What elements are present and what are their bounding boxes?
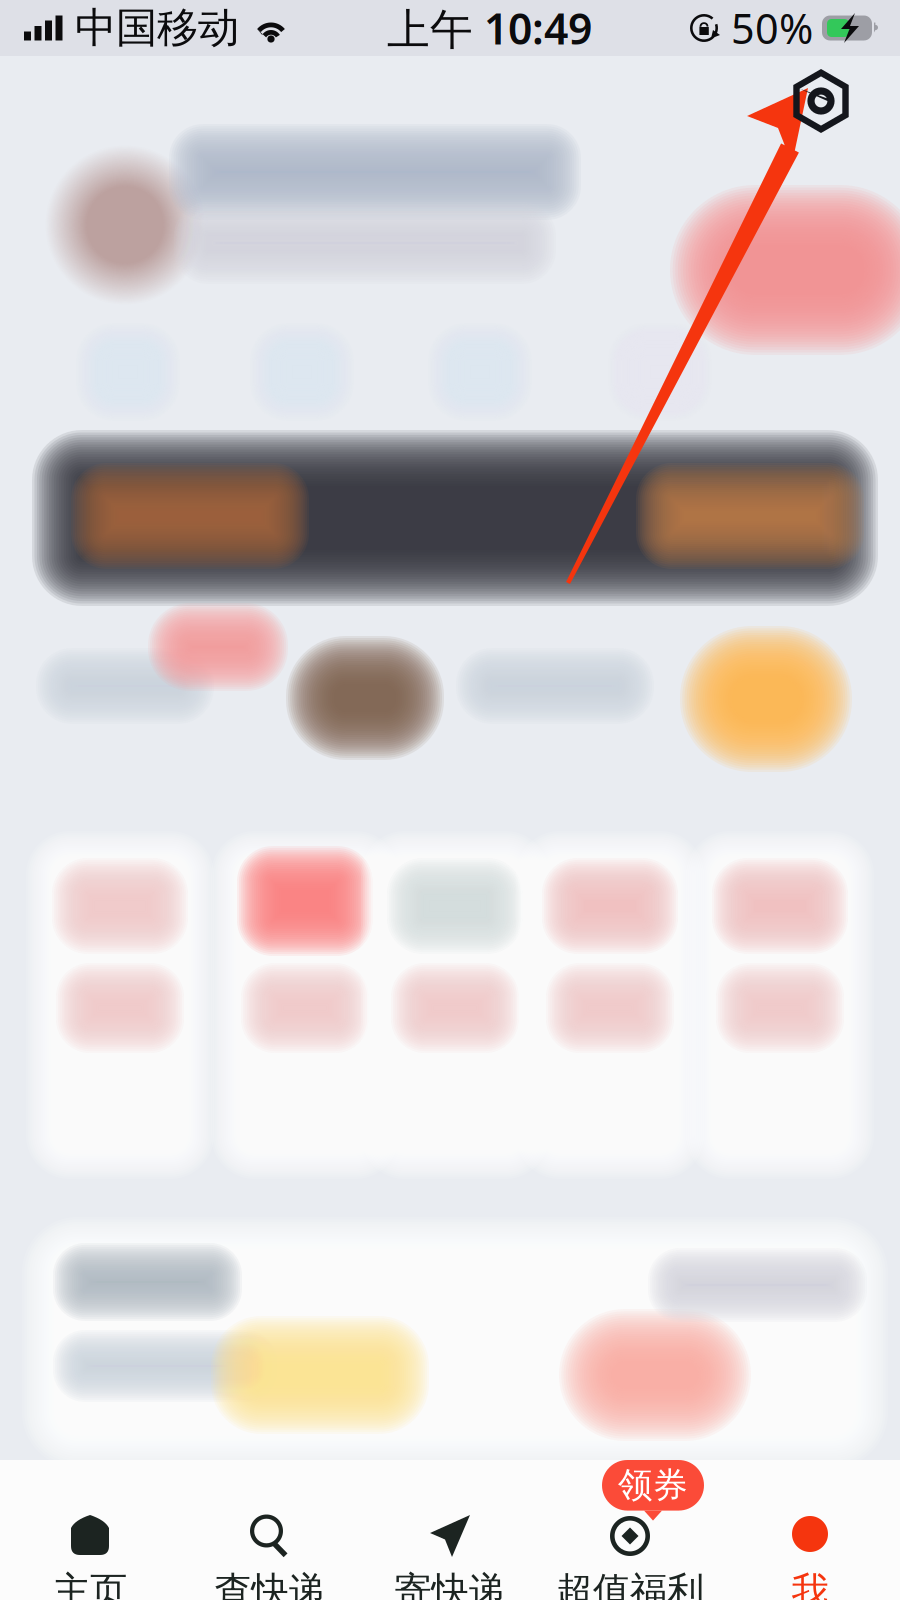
staticText: 中国移动 [75,3,239,53]
staticText: 上午 10:49 [387,0,592,56]
staticText: 我 [791,1568,828,1600]
staticText: 50% [731,1,813,55]
staticText: 主页 [53,1568,127,1600]
button[interactable]: 我 [720,1460,900,1600]
staticText: 领券 [618,1464,688,1507]
button[interactable]: 主页 [0,1460,180,1600]
button[interactable]: 查快递 [180,1460,360,1600]
button[interactable]: 寄快递 [360,1460,540,1600]
button[interactable]: 超值福利 [540,1460,720,1600]
staticText: 超值福利 [556,1568,704,1600]
staticText: 寄快递 [394,1568,505,1600]
button[interactable]: 设置 [778,58,864,144]
staticText: 查快递 [214,1568,325,1600]
